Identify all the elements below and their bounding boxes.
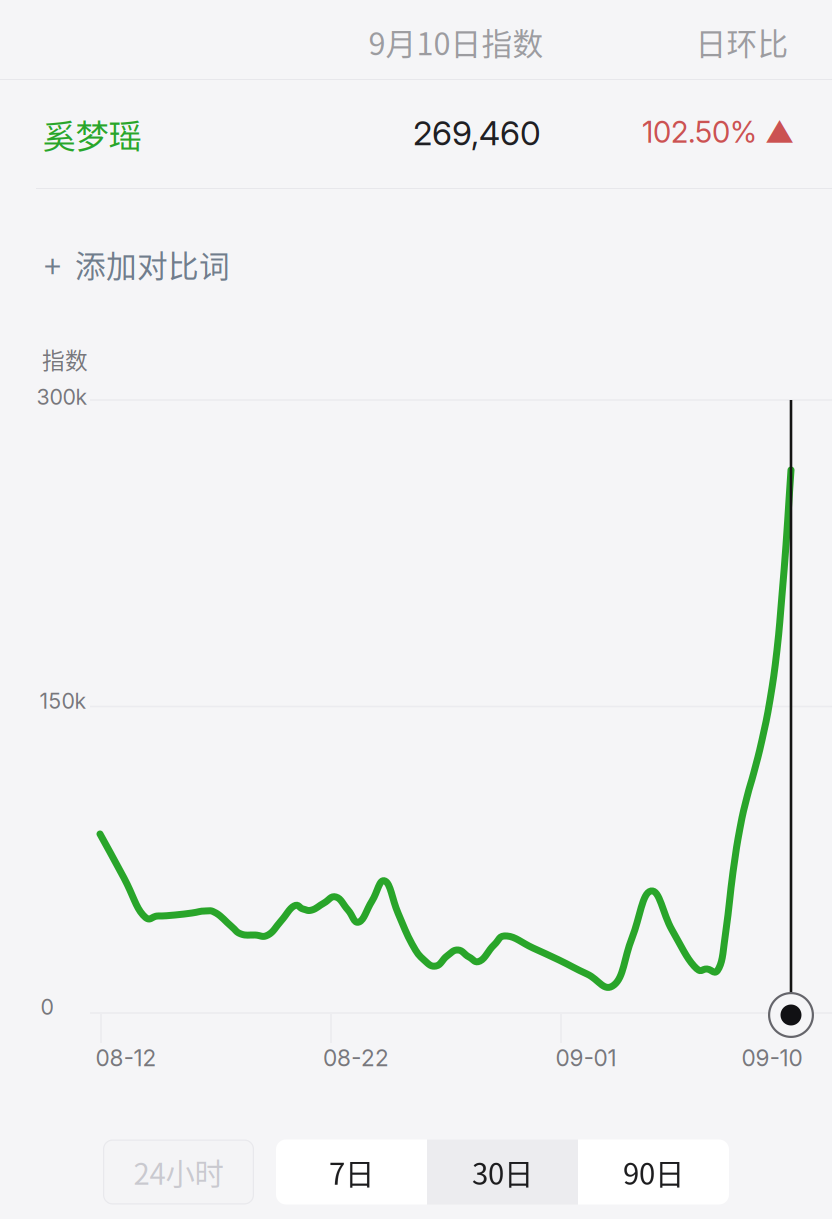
staticText: 08-22 (323, 1044, 389, 1072)
staticText: 日环比 (695, 20, 788, 64)
staticText: 08-12 (95, 1044, 156, 1072)
staticText: 300k (36, 384, 87, 410)
staticText: 09-10 (741, 1044, 802, 1072)
button[interactable]: + 添加对比词 (0, 226, 274, 302)
staticText: 指数 (42, 343, 88, 375)
button[interactable]: 30日 (427, 1139, 578, 1204)
staticText: 90日 (623, 1151, 684, 1193)
button[interactable]: 90日 (578, 1139, 729, 1204)
button[interactable]: 7日 (276, 1139, 427, 1204)
staticText: 9月10日指数 (368, 20, 543, 64)
staticText: 30日 (472, 1151, 533, 1193)
button[interactable]: 24小时 (103, 1139, 254, 1204)
staticText: 102.50% ▲ (642, 114, 794, 150)
staticText: 09-01 (555, 1044, 616, 1072)
staticText: 0 (40, 994, 53, 1020)
staticText: 7日 (329, 1151, 374, 1193)
staticText: 150k (39, 688, 86, 714)
staticText: 24小时 (133, 1151, 223, 1193)
staticText: + 添加对比词 (44, 242, 230, 286)
staticText: 奚梦瑶 (42, 110, 141, 158)
staticText: 269,460 (413, 113, 541, 153)
